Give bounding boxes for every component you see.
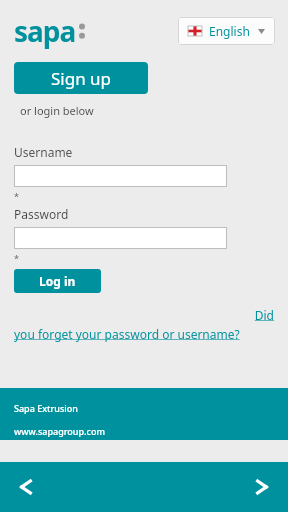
button[interactable] (14, 227, 227, 249)
staticText: you forget your password or username? (14, 326, 240, 342)
button[interactable]: Next (236, 462, 288, 512)
staticText: Username (14, 144, 73, 160)
button[interactable] (14, 165, 227, 187)
button[interactable]: Log in (14, 269, 101, 293)
staticText: or login below (20, 103, 94, 118)
button[interactable]: sapa (14, 12, 85, 50)
staticText: www.sapagroup.com (14, 425, 105, 437)
staticText: Sign up (51, 67, 112, 90)
staticText: English (209, 23, 250, 39)
button[interactable]: Sign up (14, 62, 148, 94)
staticText: * (14, 190, 19, 202)
staticText: Sapa Extrusion (14, 402, 78, 414)
staticText: * (14, 252, 19, 264)
button[interactable]: English (178, 17, 275, 45)
staticText: Password (14, 206, 69, 222)
staticText: sapa (14, 12, 76, 50)
button[interactable]: Previous (0, 462, 52, 512)
button[interactable]: Did (0, 307, 288, 342)
staticText: Did (14, 307, 274, 323)
staticText: Log in (39, 273, 76, 289)
